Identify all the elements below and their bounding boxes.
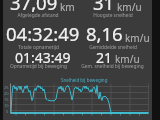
staticText: km/u (125, 31, 150, 45)
staticText: 5 (6, 109, 9, 114)
staticText: 01:43:49 (15, 48, 71, 67)
staticText: Gem. snelheid bij beweging (81, 63, 144, 70)
button[interactable]: 04:32:49 (4, 16, 81, 46)
staticText: 31 (93, 0, 115, 15)
staticText: 21 (96, 48, 113, 67)
button[interactable]: 8,16 (81, 16, 154, 46)
staticText: 04:32:49 (6, 21, 80, 46)
button[interactable]: 01:43:49 (4, 45, 81, 67)
staticText: Snelheid bij beweging (61, 77, 108, 83)
staticText: km/u (117, 0, 142, 14)
staticText: km (60, 0, 75, 14)
staticText: Hoogste snelheid (93, 12, 133, 19)
staticText: 20 (4, 91, 9, 96)
staticText: Gemiddelde snelheid (89, 44, 137, 51)
staticText: 37,09 (10, 0, 58, 15)
staticText: 10 (4, 103, 9, 108)
staticText: 8,16 (86, 21, 123, 46)
staticText: Afgelegde afstand (17, 12, 59, 19)
staticText: km/u (115, 52, 140, 66)
staticText: 25 (4, 85, 9, 90)
staticText: 15 (4, 97, 9, 102)
button[interactable]: 21 (81, 45, 154, 67)
staticText: Totale opnametijd (18, 44, 59, 51)
button[interactable]: 37,09 (4, 0, 81, 15)
button[interactable]: 31 (81, 0, 154, 15)
staticText: Opnametijd bij beweging (10, 63, 67, 70)
